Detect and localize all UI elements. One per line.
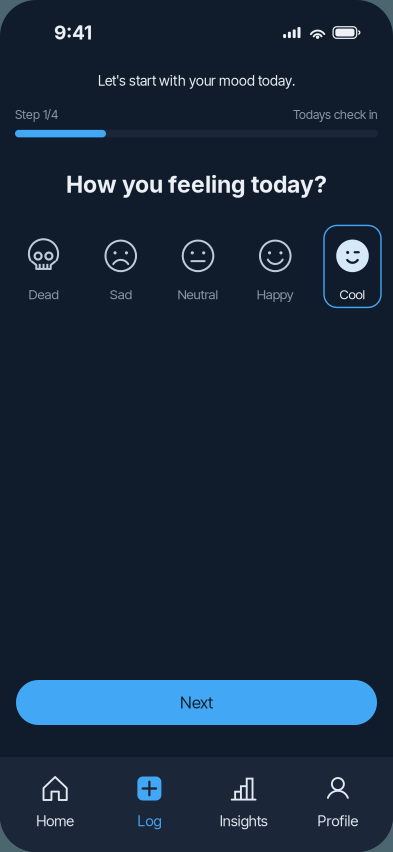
staticText: Happy bbox=[257, 286, 294, 302]
button[interactable]: Next bbox=[16, 680, 377, 725]
button[interactable]: Home bbox=[8, 757, 102, 852]
button[interactable]: Sad bbox=[92, 225, 149, 307]
staticText: Let's start with your mood today. bbox=[98, 72, 295, 89]
button[interactable]: Dead bbox=[15, 225, 72, 307]
staticText: 9:41 bbox=[54, 21, 92, 44]
staticText: Sad bbox=[110, 286, 132, 302]
staticText: Cool bbox=[339, 286, 365, 302]
staticText: Todays check in bbox=[293, 107, 378, 122]
staticText: Log bbox=[137, 812, 161, 830]
staticText: Dead bbox=[28, 286, 58, 302]
staticText: How you feeling today? bbox=[66, 170, 327, 198]
staticText: Profile bbox=[317, 812, 358, 830]
button[interactable]: Profile bbox=[291, 757, 385, 852]
staticText: Home bbox=[36, 812, 74, 830]
button[interactable]: Cool bbox=[324, 225, 381, 307]
button[interactable]: Happy bbox=[247, 225, 304, 307]
button[interactable]: Neutral bbox=[169, 225, 226, 307]
staticText: Insights bbox=[220, 812, 268, 830]
button[interactable]: Log bbox=[102, 757, 196, 852]
staticText: Neutral bbox=[177, 286, 218, 302]
staticText: Next bbox=[180, 692, 213, 712]
staticText: Step 1/4 bbox=[15, 107, 58, 122]
button[interactable]: Insights bbox=[196, 757, 291, 852]
